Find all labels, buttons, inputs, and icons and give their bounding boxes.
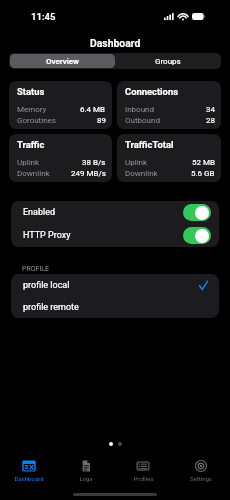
staticText: profile remote [23,302,79,313]
button[interactable]: Overview [10,54,115,68]
staticText: Traffic [17,139,45,150]
button[interactable]: Enabled [11,201,219,224]
staticText: Enabled [23,207,56,218]
button[interactable]: Logs [57,453,114,489]
button[interactable]: Connections [117,81,221,129]
button[interactable]: HTTP Proxy [11,224,219,247]
staticText: Uplink [17,158,40,167]
staticText: 5.6 GB [191,169,215,178]
staticText: PROFILE [22,265,50,273]
staticText: Overview [46,57,80,66]
button[interactable]: Status [9,81,112,129]
button[interactable]: Toggle [183,204,211,221]
staticText: Downlink [17,169,50,178]
button[interactable]: TrafficTotal [117,134,221,182]
staticText: Downlink [125,169,158,178]
staticText: 38 B/s [82,158,106,167]
staticText: HTTP Proxy [23,230,71,241]
staticText: Inbound [125,105,154,114]
staticText: 6.4 MB [80,105,106,114]
staticText: 11:45 [31,11,56,22]
staticText: Goroutines [17,116,56,125]
staticText: profile local [23,280,70,291]
button[interactable]: Dashboard [0,453,57,489]
staticText: Uplink [125,158,148,167]
staticText: Connections [125,86,178,97]
staticText: Groups [155,57,181,66]
staticText: Dashboard [90,37,141,49]
button[interactable]: Profiles [114,453,172,489]
staticText: TrafficTotal [125,139,174,150]
staticText: Settings [190,475,212,482]
button[interactable]: Groups [115,54,220,68]
staticText: 34 [206,105,215,114]
staticText: Logs [79,475,93,482]
button[interactable]: Toggle [183,227,211,244]
staticText: Dashboard [14,475,44,482]
button[interactable]: Settings [172,453,230,489]
staticText: 28 [206,116,215,125]
staticText: Status [17,86,45,97]
staticText: 89 [97,116,106,125]
staticText: Profiles [133,475,154,482]
button[interactable]: profile remote [11,296,219,318]
staticText: Outbound [125,116,160,125]
button[interactable]: profile local [11,274,219,296]
staticText: 249 MB/s [71,169,106,178]
staticText: Memory [17,105,47,114]
button[interactable]: Traffic [9,134,112,182]
staticText: 52 MB [192,158,215,167]
